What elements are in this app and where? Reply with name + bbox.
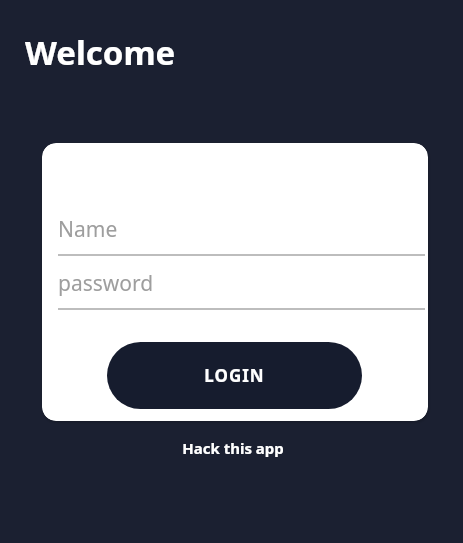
staticText: LOGIN <box>204 364 265 387</box>
button[interactable]: Name <box>58 213 425 256</box>
staticText: Hack this app <box>182 438 284 458</box>
button[interactable]: Hack this app <box>170 436 296 460</box>
staticText: Name <box>58 215 118 244</box>
button[interactable]: LOGIN <box>107 342 362 409</box>
staticText: Welcome <box>25 30 176 75</box>
button[interactable]: password <box>58 267 425 310</box>
staticText: password <box>58 269 154 298</box>
